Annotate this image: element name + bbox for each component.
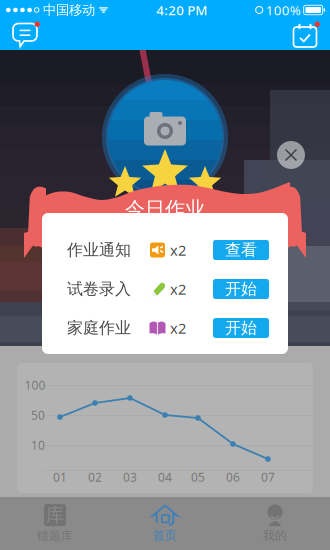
button[interactable]: 查看: [213, 240, 269, 260]
staticText: 中国移动: [39, 2, 95, 18]
staticText: 试卷录入: [67, 279, 131, 299]
staticText: 05: [191, 469, 205, 485]
staticText: 开始: [225, 279, 257, 299]
button[interactable]: 首页: [110, 497, 220, 550]
staticText: 错题库: [37, 529, 73, 543]
staticText: 10: [31, 437, 45, 453]
button[interactable]: 库: [0, 497, 110, 550]
staticText: 作业通知: [67, 240, 131, 260]
staticText: 4:20 PM: [156, 1, 207, 19]
button[interactable]: 开始: [213, 279, 269, 299]
staticText: 首页: [153, 528, 177, 543]
staticText: 100: [24, 377, 45, 393]
staticText: 查看: [225, 240, 257, 260]
staticText: 100%: [263, 1, 301, 19]
staticText: x2: [166, 318, 186, 338]
button[interactable]: Close: [274, 138, 308, 172]
staticText: 开始: [225, 318, 257, 338]
staticText: x2: [166, 279, 186, 299]
staticText: 07: [261, 469, 275, 485]
staticText: 03: [123, 469, 137, 485]
button[interactable]: 我的: [220, 497, 330, 550]
staticText: 家庭作业: [67, 318, 131, 338]
staticText: 02: [88, 469, 102, 485]
button[interactable]: Messages: [8, 20, 42, 50]
staticText: x2: [166, 240, 186, 260]
staticText: 50: [31, 407, 45, 423]
staticText: 01: [53, 469, 67, 485]
staticText: 库: [45, 504, 64, 527]
staticText: 04: [158, 469, 172, 485]
button[interactable]: 开始: [213, 318, 269, 338]
staticText: 06: [226, 469, 240, 485]
staticText: 我的: [263, 528, 287, 543]
staticText: 今日作业: [125, 197, 205, 221]
button[interactable]: Calendar: [288, 20, 322, 50]
